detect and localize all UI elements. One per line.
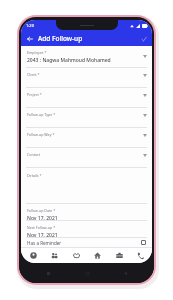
button[interactable]: Recents xyxy=(43,268,53,278)
button[interactable]: Calls xyxy=(132,247,148,263)
staticText: 1:20 xyxy=(26,23,34,28)
button[interactable]: Dashboard xyxy=(25,247,41,263)
staticText: Add Follow-up xyxy=(38,34,83,43)
staticText: Project * xyxy=(27,92,42,97)
staticText: Client * xyxy=(27,72,40,77)
button[interactable]: Details * xyxy=(21,168,152,204)
button[interactable]: Employees xyxy=(46,247,62,263)
staticText: Nov 17, 2021 xyxy=(27,215,58,221)
staticText: 2043 : Nagwa Mahmoud Mohamed xyxy=(27,57,111,64)
staticText: Follow-up Way * xyxy=(27,132,55,137)
staticText: Details * xyxy=(27,173,42,178)
button[interactable]: Follow-up Way * xyxy=(21,128,152,148)
button[interactable]: Has a Reminder xyxy=(21,238,152,247)
button[interactable]: Project * xyxy=(21,88,152,108)
staticText: Next Follow-up * xyxy=(27,225,56,230)
staticText: Follow-up Type * xyxy=(27,112,56,117)
button[interactable]: Employee * xyxy=(21,46,152,68)
button[interactable]: Follow-up Date * xyxy=(21,204,152,221)
button[interactable]: Save xyxy=(138,33,149,44)
button[interactable]: Contact xyxy=(21,148,152,168)
button[interactable]: Client * xyxy=(21,68,152,88)
staticText: Has a Reminder xyxy=(27,240,62,246)
staticText: Follow-up Date * xyxy=(27,208,56,213)
button[interactable]: Home xyxy=(89,247,105,263)
staticText: Contact xyxy=(27,152,41,157)
staticText: Employee * xyxy=(27,50,47,55)
staticText: Nov 17, 2021 xyxy=(27,232,58,238)
button[interactable]: Projects xyxy=(111,247,127,263)
button[interactable]: Next Follow-up * xyxy=(21,221,152,238)
button[interactable]: Back xyxy=(24,33,35,44)
button[interactable]: Clients xyxy=(68,247,84,263)
button[interactable]: Back xyxy=(120,268,130,278)
button[interactable]: Follow-up Type * xyxy=(21,108,152,128)
